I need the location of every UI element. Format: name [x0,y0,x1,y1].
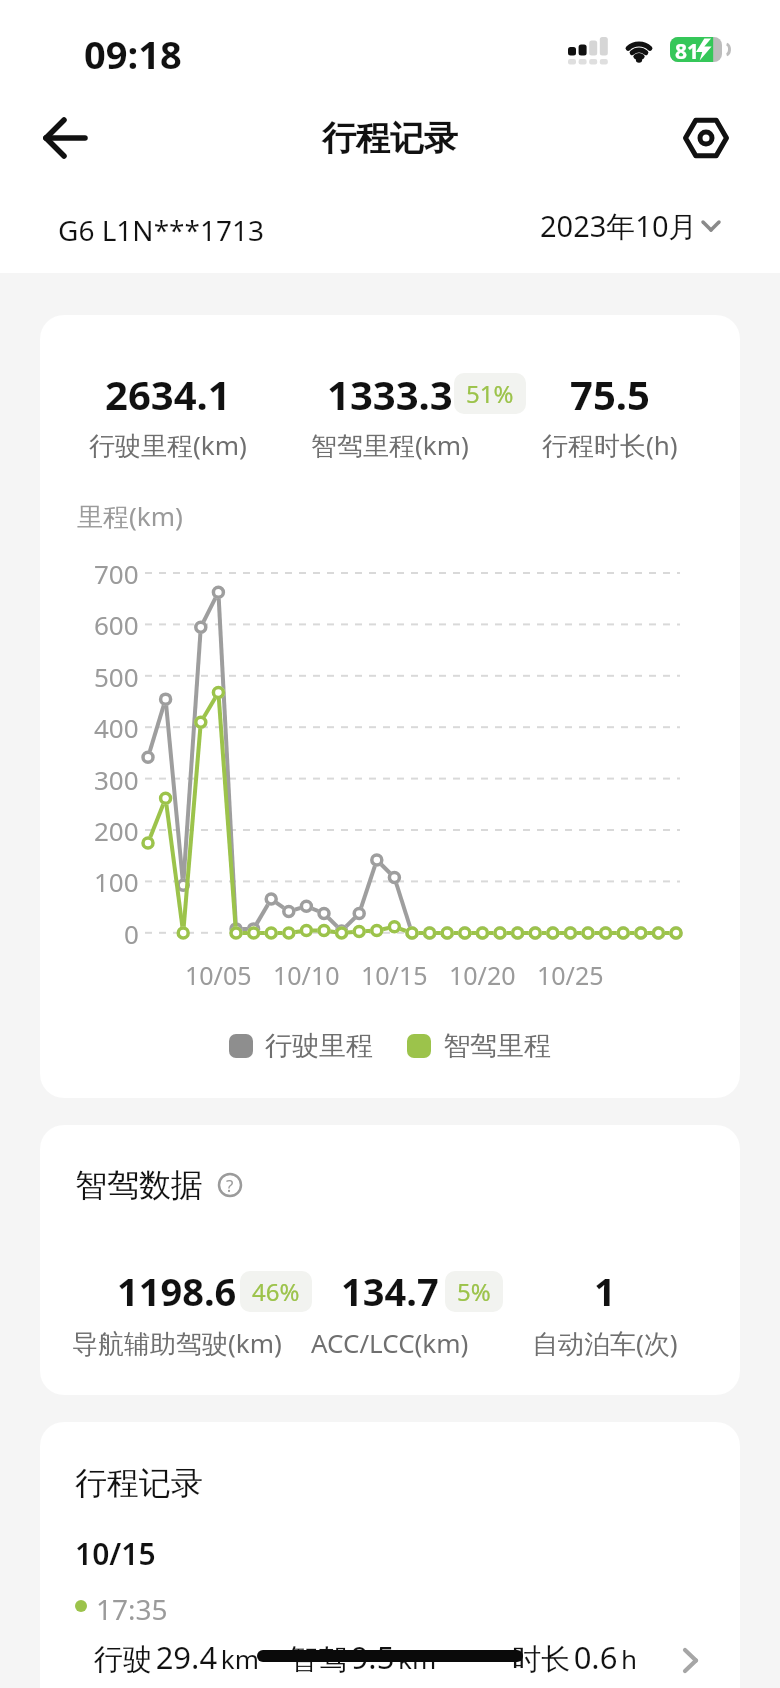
staticText: 行程记录 [322,117,458,160]
button[interactable] [36,110,92,166]
staticText: 10/15 [75,1533,156,1574]
staticText: 行驶里程(km) [89,427,247,463]
staticText: 行驶 29.4 km [94,1636,259,1678]
staticText: 智驾里程(km) [311,427,469,463]
staticText: 10/20 [449,958,516,992]
staticText: 2634.1 [105,367,231,421]
staticText: 400 [94,710,139,745]
staticText: 200 [94,813,139,848]
staticText: G6 L1N***1713 [58,211,264,249]
button[interactable]: 行驶 29.4 km [80,1630,720,1686]
staticText: 500 [94,659,139,694]
staticText: 300 [94,762,139,797]
staticText: 81 [675,37,700,66]
staticText: ACC/LCC(km) [311,1325,469,1360]
staticText: 2023年10月 [540,206,698,246]
staticText: 智驾 9.5 km [289,1636,437,1678]
staticText: 700 [94,556,139,591]
staticText: 1333.3 [327,367,453,421]
staticText: 600 [94,607,139,642]
staticText: 智驾里程 [443,1029,551,1063]
staticText: 17:35 [96,1590,168,1628]
staticText: 1 [594,1265,616,1317]
staticText: 75.5 [570,367,650,421]
staticText: 09:18 [84,28,182,80]
staticText: 行程记录 [75,1463,203,1503]
staticText: 10/05 [185,958,252,992]
staticText: 行程时长(h) [542,427,678,463]
staticText: 里程(km) [77,498,183,534]
staticText: 10/10 [273,958,340,992]
staticText: 51% [466,377,514,410]
staticText: 智驾数据 [75,1165,203,1205]
staticText: 46% [252,1275,300,1308]
button[interactable] [682,114,730,162]
button[interactable]: 2023年10月 [494,206,724,246]
staticText: 10/15 [361,958,428,992]
staticText: 导航辅助驾驶(km) [72,1325,282,1361]
staticText: 10/25 [537,958,604,992]
staticText: 100 [94,864,139,899]
staticText: 时长 0.6 h [512,1636,638,1678]
staticText: 1198.6 [117,1265,237,1317]
staticText: ? [226,1174,234,1197]
staticText: 自动泊车(次) [532,1325,678,1361]
staticText: 0 [124,916,139,951]
staticText: 134.7 [341,1265,439,1317]
staticText: 行驶里程 [265,1029,373,1063]
staticText: 5% [457,1275,491,1308]
